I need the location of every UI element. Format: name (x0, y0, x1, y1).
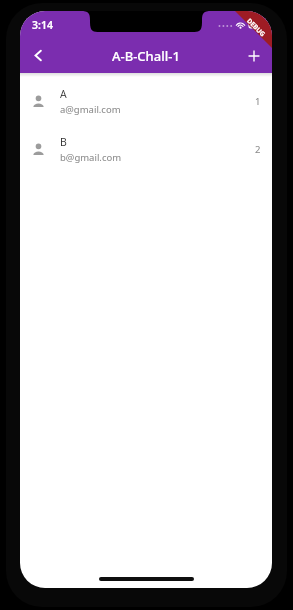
staticText: 3:14 (32, 18, 53, 32)
button[interactable]: B (20, 125, 272, 173)
staticText: A (60, 87, 67, 101)
staticText: 2 (255, 143, 261, 156)
button[interactable]: Back (20, 38, 56, 73)
button[interactable]: A (20, 77, 272, 125)
staticText: A-B-Chall-1 (112, 47, 180, 65)
button[interactable]: Add (236, 38, 272, 73)
staticText: B (60, 135, 67, 149)
staticText: 1 (255, 95, 261, 108)
staticText: a@gmail.com (60, 103, 121, 116)
staticText: DEBUG (245, 16, 268, 39)
staticText: b@gmail.com (60, 151, 122, 164)
